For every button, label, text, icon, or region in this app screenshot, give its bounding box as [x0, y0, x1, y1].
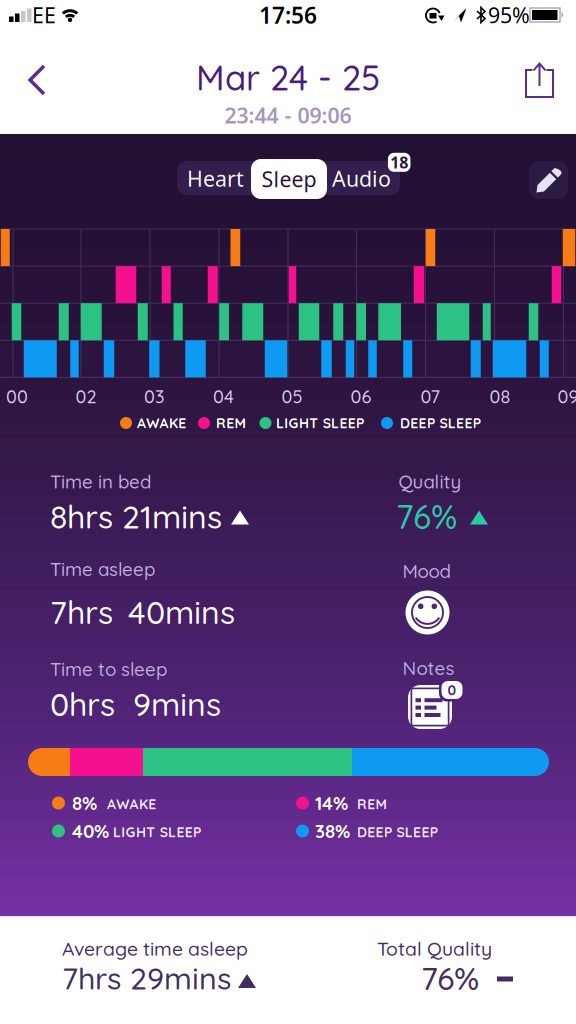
staticText: 0	[447, 681, 456, 699]
button[interactable]: Notes	[404, 671, 468, 735]
staticText: 04	[213, 385, 234, 408]
staticText: LIGHT SLEEP	[276, 414, 364, 432]
button[interactable]: Back	[14, 58, 58, 102]
staticText: Total Quality	[377, 936, 492, 961]
staticText: 76%	[421, 958, 479, 998]
staticText: Time to sleep	[50, 657, 167, 681]
button[interactable]: Audio	[325, 161, 397, 195]
staticText: REM	[357, 795, 387, 813]
staticText: 17:56	[259, 0, 317, 30]
staticText: Audio	[332, 164, 391, 193]
staticText: Heart	[187, 164, 244, 193]
staticText: DEEP SLEEP	[357, 823, 438, 841]
staticText: Quality	[398, 470, 461, 493]
staticText: Notes	[402, 656, 454, 680]
staticText: 02	[75, 385, 96, 408]
staticText: AWAKE	[137, 414, 186, 432]
staticText: 14%	[315, 791, 348, 815]
staticText: Mood	[402, 559, 450, 583]
staticText: 8%	[72, 791, 97, 815]
staticText: Average time asleep	[62, 936, 248, 961]
staticText: 21mins	[122, 496, 222, 536]
button[interactable]: Heart	[179, 161, 251, 195]
staticText: 08	[489, 385, 510, 408]
staticText: 29mins	[130, 959, 231, 997]
staticText: 03	[144, 385, 165, 408]
button[interactable]: Edit	[529, 161, 568, 199]
staticText: Time asleep	[50, 557, 155, 581]
staticText: 76%	[396, 496, 457, 537]
staticText: AWAKE	[107, 795, 156, 813]
staticText: Sleep	[261, 165, 316, 193]
staticText: DEEP SLEEP	[400, 414, 481, 432]
staticText: 07	[420, 385, 439, 408]
staticText: Time in bed	[50, 470, 151, 493]
button[interactable]: Mood	[399, 584, 455, 640]
staticText: EE	[32, 1, 56, 29]
staticText: Mar 24 - 25	[196, 56, 380, 99]
staticText: 40mins	[128, 592, 235, 632]
staticText: 95%	[488, 1, 530, 29]
staticText: 18	[390, 152, 408, 173]
staticText: 06	[350, 385, 371, 408]
staticText: 23:44 - 09:06	[224, 101, 351, 129]
button[interactable]: Sleep	[251, 159, 327, 199]
staticText: 00	[6, 385, 28, 408]
staticText: 8hrs	[50, 496, 113, 536]
button[interactable]: Share	[517, 58, 561, 102]
staticText: 40%	[72, 819, 109, 843]
staticText: 38%	[315, 819, 350, 843]
staticText: 9mins	[133, 684, 221, 724]
staticText: REM	[216, 414, 246, 432]
staticText: 05	[281, 385, 302, 408]
staticText: 09	[557, 385, 576, 408]
staticText: 7hrs	[50, 592, 113, 632]
staticText: 0hrs	[50, 684, 115, 724]
staticText: 7hrs	[62, 959, 121, 997]
staticText: LIGHT SLEEP	[113, 823, 201, 841]
